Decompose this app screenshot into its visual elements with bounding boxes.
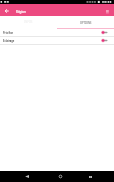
staticText: INFOS — [24, 20, 33, 24]
button[interactable]: Toggle — [101, 29, 109, 36]
staticText: Prix fixe — [3, 31, 14, 34]
button[interactable]: More options — [100, 4, 114, 16]
button[interactable]: Recent apps — [80, 171, 100, 182]
staticText: Eclairage — [3, 39, 15, 42]
button[interactable]: Prix fixe — [0, 29, 114, 36]
button[interactable]: Back — [0, 4, 13, 16]
button[interactable]: OPTIONS — [57, 16, 114, 28]
button[interactable]: Back — [17, 171, 37, 182]
staticText: Région — [16, 10, 27, 14]
button[interactable]: Home — [50, 171, 70, 182]
button[interactable]: Toggle — [101, 37, 109, 44]
staticText: OPTIONS — [80, 21, 92, 24]
button[interactable]: Eclairage — [0, 37, 114, 44]
